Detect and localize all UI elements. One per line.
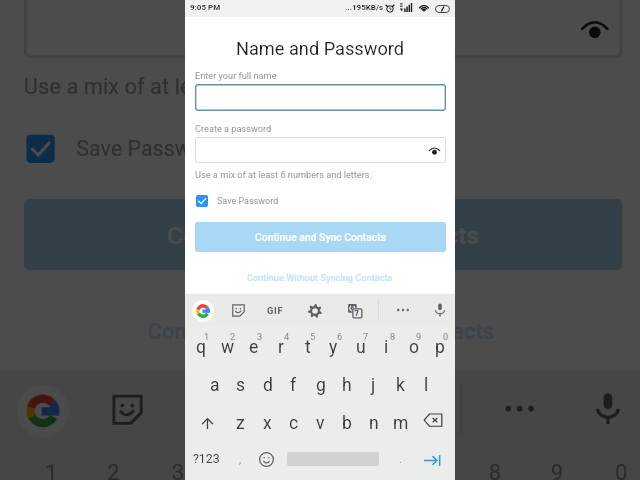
button[interactable]: Enter (414, 443, 451, 477)
staticText: Continue Without Syncing Contacts (148, 318, 496, 344)
button[interactable]: r (267, 329, 294, 365)
button[interactable]: Google (12, 380, 74, 442)
button[interactable]: i (448, 454, 513, 480)
button[interactable]: Stickers (95, 377, 157, 439)
button[interactable]: Show password (579, 13, 610, 44)
button[interactable]: Google (190, 298, 216, 324)
button[interactable] (195, 84, 446, 111)
button[interactable]: Emoji (253, 442, 280, 476)
button[interactable]: Continue Without Syncing Contacts (185, 267, 455, 287)
staticText: e (153, 473, 176, 480)
button[interactable]: Shift (187, 405, 227, 441)
button[interactable]: d (254, 367, 281, 403)
button[interactable]: o (400, 329, 427, 365)
staticText: g (316, 375, 326, 396)
button[interactable]: c (280, 405, 307, 441)
button[interactable]: GIF (263, 299, 287, 321)
button[interactable]: k (387, 367, 414, 403)
button[interactable]: y (320, 329, 347, 365)
button[interactable]: t (260, 454, 324, 480)
button[interactable]: i (373, 329, 400, 365)
button[interactable]: z (227, 405, 254, 441)
staticText: Save Password (76, 137, 224, 163)
button[interactable]: More (489, 377, 551, 439)
button[interactable]: GIF (186, 382, 243, 435)
button[interactable]: l (413, 367, 440, 403)
button[interactable]: p (574, 454, 639, 480)
button[interactable]: Continue and Sync Contacts (24, 199, 622, 270)
button[interactable]: Settings (279, 380, 341, 442)
staticText: Continue and Sync Contacts (167, 220, 482, 249)
button[interactable]: a (201, 367, 228, 403)
staticText: d (263, 375, 273, 396)
button[interactable]: s (227, 367, 254, 403)
staticText: j (371, 375, 376, 396)
button[interactable]: More (390, 297, 416, 323)
staticText: 3 (257, 331, 263, 342)
button[interactable]: q (5, 454, 69, 480)
button[interactable]: Save Password (196, 192, 279, 210)
staticText: s (236, 375, 246, 396)
button[interactable]: Stickers (225, 297, 251, 323)
staticText: GIF (267, 305, 284, 316)
button[interactable]: o (513, 454, 577, 480)
button[interactable]: Translate (374, 380, 436, 442)
staticText: 2 (230, 331, 236, 342)
button[interactable]: t (294, 329, 321, 365)
staticText: y (329, 337, 338, 358)
staticText: Continue and Sync Contacts (255, 231, 387, 243)
button[interactable]: e (240, 329, 267, 365)
staticText: Enter your full name (195, 70, 277, 81)
button[interactable]: Continue and Sync Contacts (195, 222, 446, 252)
button[interactable]: Backspace (413, 405, 453, 441)
staticText: e (249, 337, 259, 358)
button[interactable]: Save Password (26, 127, 224, 170)
button[interactable]: j (360, 367, 387, 403)
button[interactable]: w (69, 454, 133, 480)
staticText: Use a mix of at least 6 numbers and lett… (24, 72, 446, 99)
button[interactable]: u (386, 454, 451, 480)
staticText: Create a password (195, 123, 272, 134)
button[interactable]: Show password (24, 0, 622, 58)
staticText: a (210, 375, 220, 396)
staticText: 8 (390, 331, 396, 342)
button[interactable]: Continue Without Syncing Contacts (0, 306, 640, 354)
staticText: 9:05 PM (190, 3, 221, 12)
staticText: o (409, 337, 419, 358)
button[interactable]: n (360, 405, 387, 441)
button[interactable]: Voice input (427, 297, 453, 323)
button[interactable]: w (214, 329, 241, 365)
button[interactable]: v (307, 405, 334, 441)
button[interactable]: ?123 (186, 442, 226, 476)
staticText: Save Password (217, 196, 279, 207)
button[interactable]: Show password (428, 144, 441, 157)
button[interactable]: Show password (195, 137, 446, 163)
button[interactable]: m (387, 405, 414, 441)
button[interactable]: f (280, 367, 307, 403)
button[interactable]: Voice input (577, 377, 639, 439)
button[interactable]: Translate (342, 298, 368, 324)
button[interactable]: Space (287, 442, 379, 476)
button[interactable]: u (347, 329, 374, 365)
staticText: k (396, 375, 405, 396)
button[interactable]: h (333, 367, 360, 403)
staticText: . (399, 453, 402, 466)
button[interactable]: p (426, 329, 453, 365)
button[interactable]: x (254, 405, 281, 441)
staticText: p (435, 337, 445, 358)
button[interactable]: r (195, 454, 260, 480)
staticText: , (239, 453, 242, 466)
button[interactable]: b (333, 405, 360, 441)
button[interactable]: y (322, 454, 386, 480)
button[interactable]: , (228, 442, 252, 476)
button[interactable]: g (307, 367, 334, 403)
staticText: m (393, 413, 409, 434)
button[interactable]: e (131, 454, 195, 480)
button[interactable]: q (187, 329, 214, 365)
button[interactable]: Settings (302, 298, 328, 324)
